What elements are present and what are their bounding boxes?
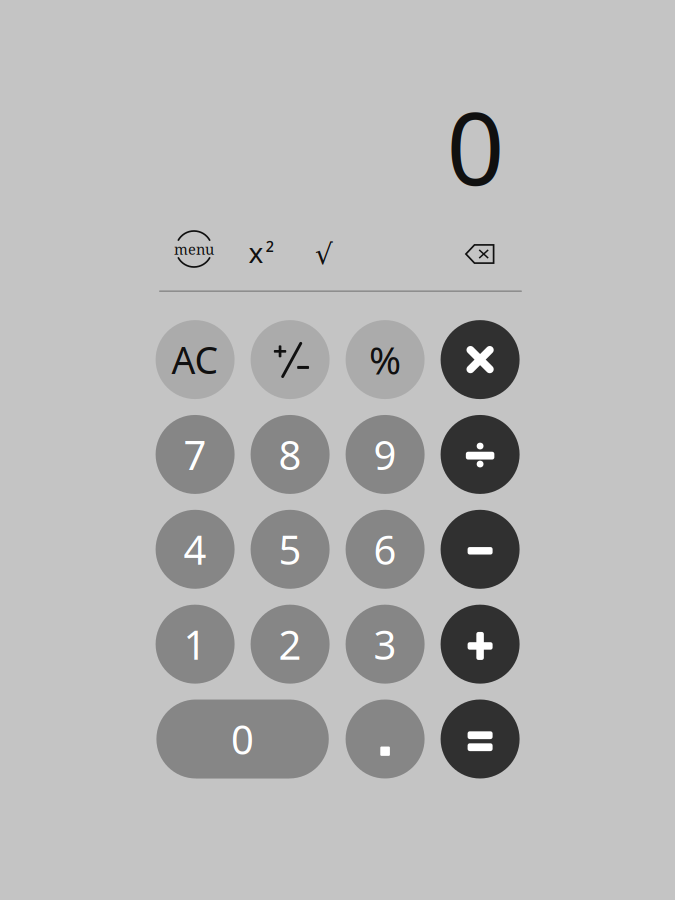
staticText: menu [174, 239, 214, 259]
button[interactable]: % [346, 320, 425, 399]
staticText: 8 [279, 428, 302, 481]
staticText: 6 [374, 523, 397, 576]
button[interactable]: Menu [172, 227, 216, 271]
staticText: x [249, 234, 264, 271]
button[interactable]: Decimal point [346, 699, 425, 778]
button[interactable]: 1 [156, 605, 235, 684]
button[interactable]: 7 [156, 415, 235, 494]
button[interactable]: Equals [441, 699, 520, 778]
button[interactable]: 4 [156, 510, 235, 589]
button[interactable]: 9 [346, 415, 425, 494]
staticText: AC [172, 335, 219, 384]
button[interactable]: Plus [441, 605, 520, 684]
button[interactable]: 6 [346, 510, 425, 589]
staticText: ² [266, 237, 274, 269]
staticText: % [369, 334, 401, 385]
button[interactable]: Minus [441, 510, 520, 589]
button[interactable]: AC [156, 320, 235, 399]
button[interactable]: Divide [441, 415, 520, 494]
staticText: 3 [374, 618, 397, 671]
staticText: 4 [184, 523, 207, 576]
staticText: 9 [374, 428, 397, 481]
button[interactable]: 0 [156, 699, 329, 778]
button[interactable]: 5 [251, 510, 330, 589]
button[interactable]: 8 [251, 415, 330, 494]
staticText: 7 [184, 428, 207, 481]
button[interactable]: 3 [346, 605, 425, 684]
staticText: √ [315, 239, 333, 270]
button[interactable]: Multiply [441, 320, 520, 399]
staticText: 1 [184, 618, 207, 671]
staticText: 0 [231, 712, 254, 765]
staticText: 0 [446, 79, 504, 213]
button[interactable]: Square root [302, 233, 346, 277]
staticText: 2 [279, 618, 302, 671]
button[interactable]: Square [237, 229, 281, 273]
button[interactable]: 2 [251, 605, 330, 684]
button[interactable]: Delete [458, 237, 502, 271]
staticText: 5 [279, 523, 302, 576]
button[interactable]: Plus minus [251, 320, 330, 399]
